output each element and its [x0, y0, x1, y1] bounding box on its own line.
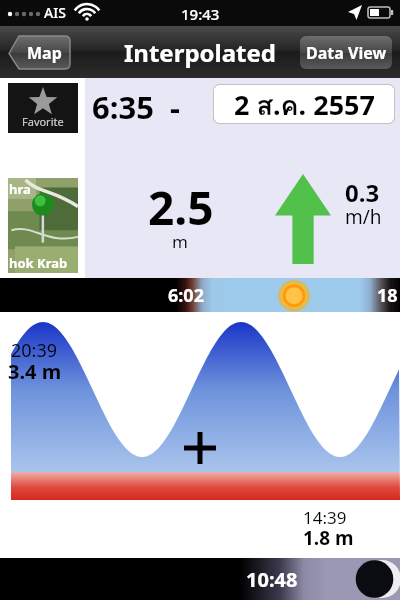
- staticText: 2 ส.ค. 2557: [234, 84, 375, 124]
- staticText: hra: [9, 180, 31, 198]
- staticText: 14:39: [303, 506, 347, 529]
- staticText: Map: [27, 42, 62, 64]
- staticText: 6:35 -: [92, 86, 180, 128]
- staticText: m: [172, 230, 188, 253]
- other: Tide rising: [275, 174, 331, 264]
- staticText: 3.4 m: [8, 358, 62, 385]
- button[interactable]: 2 ส.ค. 2557: [213, 84, 395, 124]
- button[interactable]: Map: [8, 36, 70, 69]
- button[interactable]: Favorite: [8, 83, 78, 133]
- staticText: Interpolated: [124, 36, 277, 69]
- staticText: Favorite: [22, 114, 64, 129]
- staticText: 6:02: [168, 283, 204, 308]
- staticText: m/h: [345, 204, 382, 230]
- staticText: 10:48: [246, 566, 298, 593]
- staticText: 20:39: [11, 338, 58, 363]
- button[interactable]: Data View: [300, 36, 392, 69]
- staticText: 1.8 m: [303, 525, 354, 551]
- staticText: 19:43: [181, 4, 220, 24]
- staticText: hok Krab: [9, 254, 68, 272]
- staticText: 0.3: [345, 176, 380, 209]
- staticText: 2.5: [148, 176, 214, 239]
- staticText: 18: [377, 283, 398, 308]
- staticText: Data View: [306, 42, 387, 64]
- staticText: AIS: [44, 3, 66, 22]
- button[interactable]: hra: [8, 178, 78, 273]
